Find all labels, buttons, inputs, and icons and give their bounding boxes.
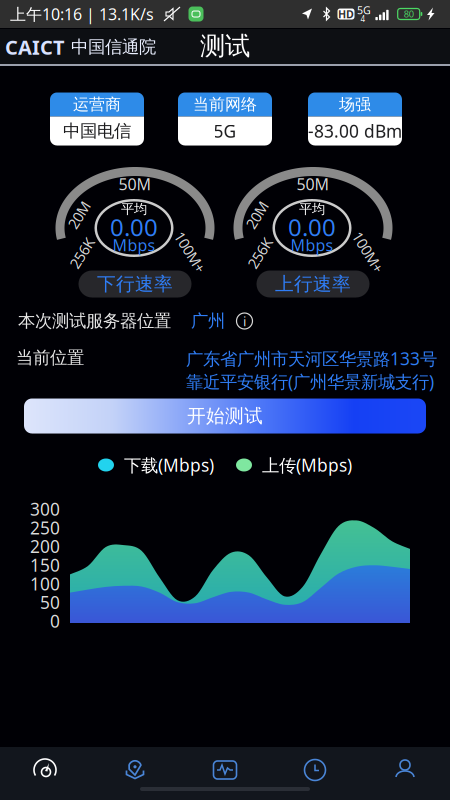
staticText: 上传(Mbps) bbox=[252, 453, 352, 476]
staticText: 200 bbox=[30, 535, 60, 558]
staticText: -83.00 dBm bbox=[308, 119, 402, 142]
button[interactable]: 覆盖 bbox=[90, 743, 180, 796]
staticText: 256K bbox=[65, 243, 98, 263]
staticText: 100 bbox=[30, 572, 60, 595]
staticText: 广东省广州市天河区华景路133号靠近平安银行(广州华景新城支行) bbox=[186, 347, 437, 393]
staticText: 场强 bbox=[339, 95, 371, 114]
staticText: 256K bbox=[243, 243, 276, 263]
staticText: 50 bbox=[40, 591, 60, 614]
staticText: 中国电信 bbox=[63, 120, 131, 142]
staticText: 300 bbox=[30, 497, 60, 520]
button[interactable]: 历史 bbox=[270, 743, 360, 796]
staticText: 运营商 bbox=[73, 95, 121, 114]
button[interactable]: 场强 bbox=[308, 92, 402, 145]
staticText: 50M bbox=[296, 173, 329, 195]
button[interactable]: 上行速率 bbox=[256, 270, 369, 297]
button[interactable]: 当前网络 bbox=[178, 92, 272, 145]
staticText: 当前位置 bbox=[16, 347, 84, 368]
staticText: 平均 bbox=[121, 201, 147, 217]
staticText: Mbps bbox=[112, 234, 155, 256]
button[interactable]: 测速 bbox=[0, 743, 90, 796]
staticText: 80 bbox=[404, 8, 414, 20]
staticText: 0.00 bbox=[110, 211, 158, 243]
button[interactable]: 开始测试 bbox=[24, 398, 426, 433]
button[interactable]: 下行速率 bbox=[78, 270, 191, 297]
staticText: 20M bbox=[242, 205, 271, 225]
staticText: i bbox=[243, 312, 246, 330]
staticText: HD bbox=[338, 7, 354, 21]
staticText: Mbps bbox=[290, 234, 333, 256]
staticText: 4 bbox=[360, 14, 365, 24]
staticText: 250 bbox=[30, 516, 60, 539]
staticText: 下载(Mbps) bbox=[114, 453, 214, 476]
staticText: 0 bbox=[50, 609, 60, 632]
staticText: CAICT bbox=[5, 34, 65, 60]
button[interactable]: 报告 bbox=[180, 743, 270, 796]
button[interactable]: 我的 bbox=[360, 743, 450, 796]
staticText: 平均 bbox=[299, 201, 325, 217]
staticText: 上午10:16 | 13.1K/s bbox=[10, 3, 154, 25]
staticText: 开始测试 bbox=[187, 404, 263, 427]
staticText: 测试 bbox=[200, 30, 250, 61]
staticText: 当前网络 bbox=[193, 95, 257, 114]
staticText: 50M bbox=[118, 173, 151, 195]
staticText: 中国信通院 bbox=[71, 36, 156, 58]
staticText: 本次测试服务器位置 bbox=[18, 310, 171, 332]
staticText: 5G bbox=[213, 119, 236, 142]
button[interactable]: 广州 bbox=[191, 310, 253, 332]
staticText: 下行速率 bbox=[97, 272, 173, 295]
staticText: 广州 bbox=[191, 310, 225, 332]
staticText: 上行速率 bbox=[275, 272, 351, 295]
staticText: 100M+ bbox=[345, 242, 390, 262]
staticText: 0.00 bbox=[288, 211, 336, 243]
staticText: 150 bbox=[30, 553, 60, 576]
staticText: 100M+ bbox=[167, 242, 212, 262]
staticText: 20M bbox=[64, 205, 93, 225]
staticText: 5G bbox=[357, 3, 371, 17]
button[interactable]: 运营商 bbox=[50, 92, 144, 145]
